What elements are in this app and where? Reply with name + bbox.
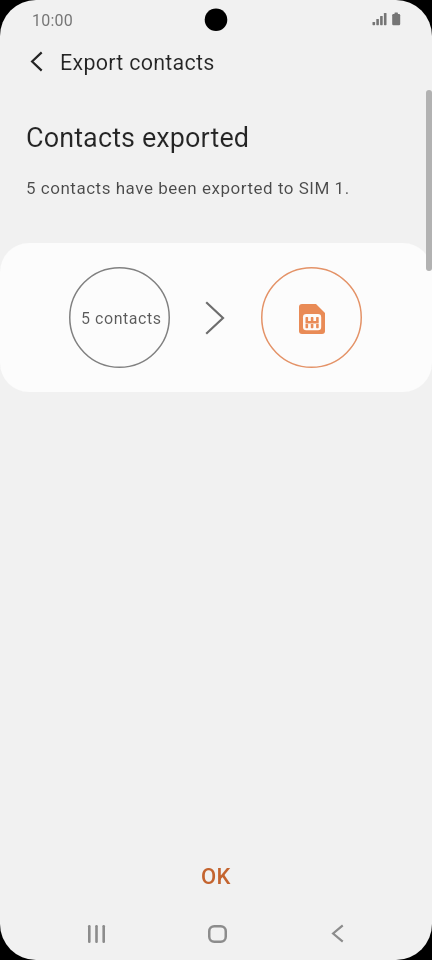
staticText: OK xyxy=(201,864,231,890)
button[interactable]: Home xyxy=(192,912,240,960)
staticText: 5 contacts have been exported to SIM 1. xyxy=(26,178,350,198)
staticText: 5 contacts xyxy=(81,309,162,328)
button[interactable]: OK xyxy=(0,852,432,902)
button[interactable]: Recent apps xyxy=(72,912,120,960)
staticText: 10:00 xyxy=(32,11,73,30)
staticText: Contacts exported xyxy=(26,122,250,154)
button[interactable]: Back xyxy=(313,912,361,960)
staticText: Export contacts xyxy=(60,50,215,75)
button[interactable]: Back xyxy=(12,40,60,88)
